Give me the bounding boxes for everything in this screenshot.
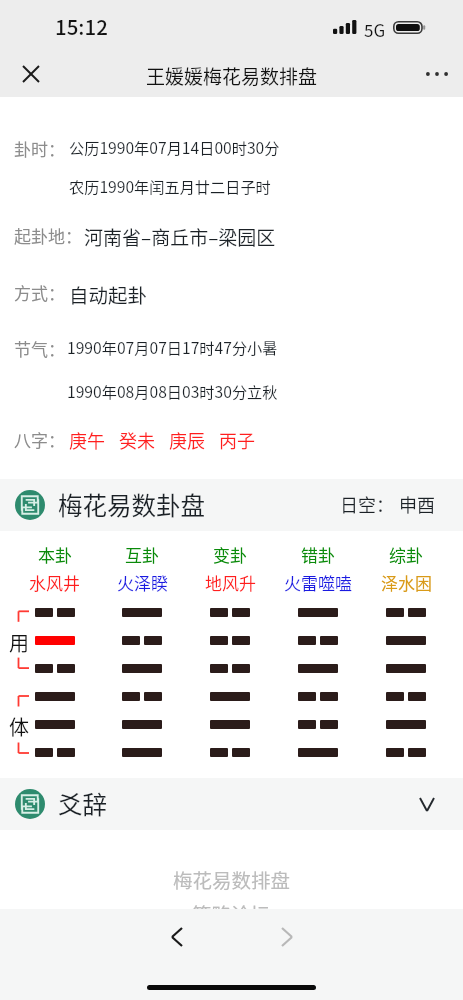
staticText: 丙子 bbox=[219, 427, 255, 453]
staticText: 地风升 bbox=[205, 570, 256, 595]
staticText: 庚午 bbox=[69, 427, 105, 453]
staticText: 变卦 bbox=[213, 542, 247, 567]
staticText: 策略论坛 bbox=[192, 899, 271, 927]
staticText: 体 bbox=[9, 712, 29, 741]
staticText: 火泽睽 bbox=[117, 570, 168, 595]
staticText: 用 bbox=[9, 628, 29, 657]
staticText: 水风井 bbox=[29, 570, 80, 595]
button[interactable]: More options bbox=[419, 56, 455, 92]
staticText: 1990年08月08日03时30分立秋 bbox=[67, 380, 278, 403]
staticText: 自动起卦 bbox=[69, 280, 148, 308]
staticText: 本卦 bbox=[38, 542, 72, 567]
staticText: 农历1990年闰五月廿二日子时 bbox=[69, 175, 271, 198]
staticText: 公历1990年07月14日00时30分 bbox=[69, 136, 280, 159]
staticText: 爻辞 bbox=[58, 786, 107, 821]
staticText: 癸未 bbox=[119, 427, 155, 453]
staticText: 王媛媛梅花易数排盘 bbox=[146, 62, 318, 90]
staticText: 方式： bbox=[14, 280, 65, 305]
button[interactable]: Close bbox=[8, 51, 53, 96]
button[interactable]: Back bbox=[155, 915, 199, 959]
staticText: 庚辰 bbox=[169, 427, 205, 453]
button[interactable]: 梅花易数卦盘 bbox=[0, 479, 463, 531]
staticText: 火雷噬嗑 bbox=[284, 570, 352, 595]
staticText: 错卦 bbox=[301, 542, 335, 567]
staticText: 5G bbox=[364, 17, 386, 42]
staticText: 1990年07月07日17时47分小暑 bbox=[67, 336, 278, 359]
staticText: 节气： bbox=[14, 336, 65, 361]
staticText: 泽水困 bbox=[381, 570, 432, 595]
staticText: 申酉 bbox=[399, 491, 435, 517]
staticText: 梅花易数排盘 bbox=[173, 865, 291, 893]
staticText: 梅花易数卦盘 bbox=[58, 487, 205, 522]
staticText: 八字： bbox=[14, 427, 65, 452]
button[interactable]: 爻辞 bbox=[0, 778, 463, 830]
staticText: 卦时： bbox=[14, 136, 65, 161]
staticText: 综卦 bbox=[389, 542, 423, 567]
staticText: 日空： bbox=[340, 491, 394, 517]
staticText: 15:12 bbox=[55, 11, 108, 41]
button[interactable]: Forward bbox=[265, 915, 309, 959]
staticText: 起卦地： bbox=[14, 223, 82, 248]
staticText: 河南省–商丘市–梁园区 bbox=[84, 223, 276, 251]
staticText: 互卦 bbox=[125, 542, 159, 567]
